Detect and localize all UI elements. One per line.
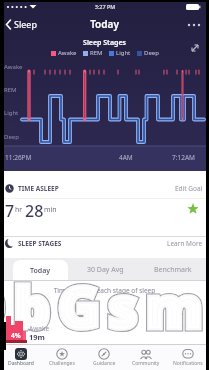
staticText: Learn More (167, 239, 203, 248)
staticText: Awake (58, 49, 77, 57)
staticText: 4AM (119, 153, 133, 162)
staticText: 7 (5, 200, 15, 217)
staticText: 30 Day Avg (87, 265, 124, 275)
button[interactable]: Guidance (83, 345, 125, 370)
staticText: REM (4, 86, 17, 94)
staticText: Dashboard (8, 360, 34, 367)
staticText: Today (0, 17, 209, 31)
button[interactable]: Dashboard (0, 345, 41, 370)
button[interactable]: Today (13, 260, 68, 281)
staticText: Challenges (49, 360, 75, 367)
staticText: Sleep (14, 18, 37, 30)
staticText: Time spent in each stage of sleep (0, 286, 209, 295)
staticText: ObGsm (0, 267, 169, 345)
staticText: 7:12AM (172, 153, 195, 162)
staticText: 19m (29, 332, 45, 342)
staticText: Edit Goal (175, 184, 203, 193)
staticText: SLEEP STAGES (18, 239, 62, 248)
button[interactable]: Sleep (5, 16, 51, 32)
staticText: REM (90, 49, 103, 57)
staticText: Benchmark (154, 265, 192, 275)
staticText: Awake (4, 63, 23, 71)
button[interactable]: Notifications (167, 345, 209, 370)
button[interactable]: SLEEP STAGES (0, 237, 209, 250)
staticText: Notifications (173, 360, 203, 367)
button[interactable] (186, 18, 204, 30)
staticText: Community (132, 360, 160, 367)
staticText: 3:27 PM (80, 3, 130, 10)
button[interactable]: 30 Day Avg (78, 258, 133, 281)
staticText: 4% (11, 331, 21, 340)
staticText: 28 (25, 200, 44, 217)
staticText: Awake (29, 324, 50, 333)
staticText: Deep (144, 49, 159, 57)
staticText: 11:26PM (5, 153, 32, 162)
button[interactable]: Community (125, 345, 167, 370)
button[interactable]: Challenges (41, 345, 83, 370)
staticText: ObGsm (0, 267, 169, 345)
staticText: ObGsm (0, 267, 169, 345)
staticText: Sleep Stages (0, 38, 209, 48)
staticText: Deep (4, 133, 19, 141)
staticText: TIME ASLEEP (18, 184, 59, 193)
button[interactable]: TIME ASLEEP (0, 178, 209, 198)
staticText: Guidance (93, 360, 116, 367)
button[interactable] (188, 41, 202, 55)
staticText: hr (15, 205, 25, 215)
staticText: min (44, 205, 57, 215)
staticText: Light (116, 49, 131, 57)
staticText: Today (30, 266, 51, 276)
button[interactable]: Benchmark (145, 258, 200, 281)
staticText: Light (4, 109, 19, 117)
